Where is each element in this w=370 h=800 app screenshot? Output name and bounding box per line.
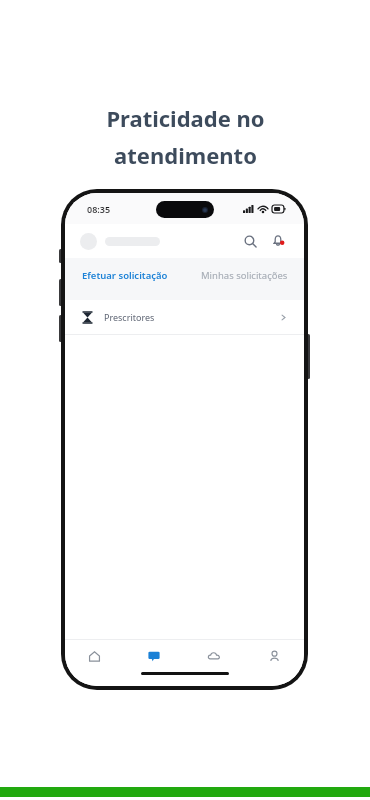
button[interactable]: Buscar: [239, 230, 261, 252]
staticText: Prescritores: [104, 311, 155, 323]
button[interactable]: Notificações: [267, 230, 289, 252]
button[interactable]: Minhas solicitações: [184, 258, 304, 292]
button[interactable]: Nuvem: [184, 640, 244, 672]
button[interactable]: Mensagens: [124, 640, 184, 672]
staticText: 08:35: [87, 203, 111, 215]
button[interactable]: Perfil: [244, 640, 304, 672]
button[interactable]: Prescritores: [65, 300, 304, 334]
staticText: atendimento: [114, 140, 257, 170]
button[interactable]: Efetuar solicitação: [65, 258, 184, 292]
button[interactable]: Início: [65, 640, 124, 672]
staticText: Minhas solicitações: [201, 269, 288, 282]
staticText: Praticidade no: [106, 103, 265, 133]
staticText: Efetuar solicitação: [82, 269, 168, 282]
